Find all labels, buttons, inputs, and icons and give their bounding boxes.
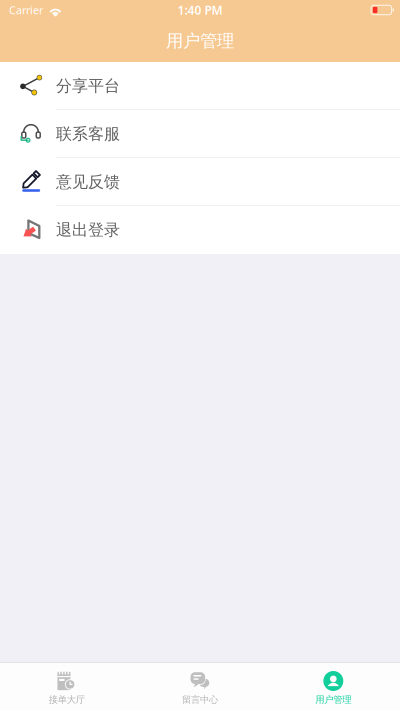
button[interactable]: 分享平台	[0, 62, 400, 110]
staticText: 分享平台	[56, 76, 120, 96]
staticText: 1:40 PM	[177, 2, 222, 18]
button[interactable]: 用户管理	[267, 663, 400, 710]
button[interactable]: 接单大厅	[0, 663, 133, 710]
button[interactable]: 退出登录	[0, 206, 400, 254]
staticText: 用户管理	[315, 694, 351, 705]
staticText: Carrier	[9, 3, 43, 17]
staticText: 用户管理	[166, 30, 234, 52]
button[interactable]: 联系客服	[0, 110, 400, 158]
staticText: 退出登录	[56, 220, 120, 240]
button[interactable]: 留言中心	[133, 663, 267, 710]
staticText: 联系客服	[56, 124, 120, 144]
staticText: 接单大厅	[49, 694, 85, 705]
staticText: 留言中心	[182, 694, 218, 705]
button[interactable]: 意见反馈	[0, 158, 400, 206]
staticText: 意见反馈	[56, 172, 120, 192]
